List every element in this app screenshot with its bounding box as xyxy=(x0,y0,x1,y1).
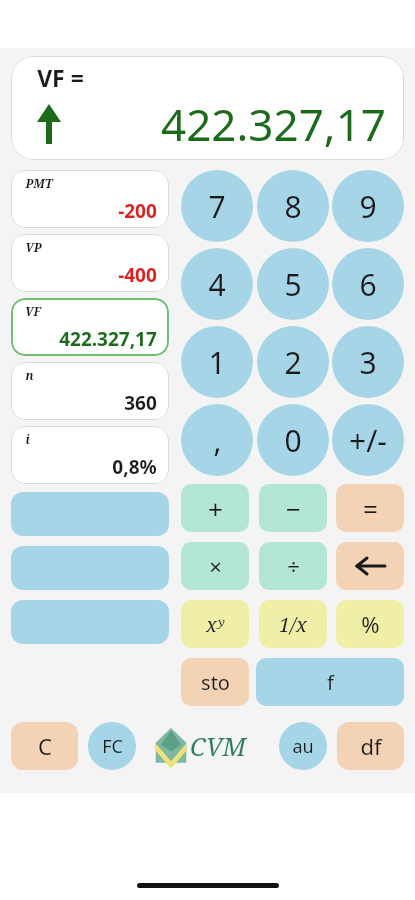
staticText: PMT xyxy=(25,175,53,191)
button[interactable]: +/- xyxy=(332,404,404,476)
button[interactable] xyxy=(11,546,169,590)
button[interactable]: ÷ xyxy=(259,542,327,590)
button[interactable]: , xyxy=(181,404,253,476)
button[interactable] xyxy=(11,492,169,536)
staticText: 6 xyxy=(359,264,377,305)
button[interactable]: au xyxy=(279,722,327,770)
button[interactable]: FC xyxy=(88,722,136,770)
staticText: i xyxy=(25,431,30,447)
staticText: 5 xyxy=(284,264,302,305)
staticText: f xyxy=(327,669,334,696)
staticText: C xyxy=(38,731,52,761)
staticText: CVM xyxy=(190,729,247,763)
button[interactable]: sto xyxy=(181,658,249,706)
button[interactable]: 9 xyxy=(332,170,404,242)
staticText: VF xyxy=(25,303,41,319)
staticText: VF = xyxy=(37,62,84,93)
button[interactable]: f xyxy=(256,658,404,706)
staticText: 2 xyxy=(284,342,302,383)
staticText: 0 xyxy=(284,420,302,461)
staticText: 9 xyxy=(359,186,377,227)
staticText: ÷ xyxy=(287,551,300,581)
staticText: sto xyxy=(201,669,230,696)
button[interactable]: × xyxy=(181,542,249,590)
button[interactable]: − xyxy=(259,484,327,532)
button[interactable]: VP xyxy=(11,234,169,292)
staticText: -200 xyxy=(118,198,157,224)
button[interactable]: Backspace xyxy=(336,542,404,590)
button[interactable]: 2 xyxy=(257,326,329,398)
button[interactable]: 3 xyxy=(332,326,404,398)
staticText: 422.327,17 xyxy=(161,94,386,154)
button[interactable]: VF xyxy=(11,298,169,356)
staticText: 8 xyxy=(284,186,302,227)
button[interactable]: df xyxy=(337,722,404,770)
button[interactable]: % xyxy=(336,600,404,648)
staticText: +/- xyxy=(349,420,387,461)
staticText: % xyxy=(361,609,380,639)
button[interactable]: = xyxy=(336,484,404,532)
staticText: VP xyxy=(25,239,42,255)
button[interactable]: + xyxy=(181,484,249,532)
staticText: , xyxy=(213,420,222,461)
staticText: 1 xyxy=(208,342,226,383)
button[interactable]: 1/x xyxy=(259,600,327,648)
staticText: × xyxy=(209,551,222,581)
staticText: 3 xyxy=(359,342,377,383)
button[interactable]: PMT xyxy=(11,170,169,228)
button[interactable]: C xyxy=(11,722,78,770)
staticText: -400 xyxy=(118,262,157,288)
button[interactable] xyxy=(11,600,169,644)
button[interactable]: 6 xyxy=(332,248,404,320)
staticText: 360 xyxy=(124,390,157,416)
button[interactable]: 8 xyxy=(257,170,329,242)
button[interactable]: 4 xyxy=(181,248,253,320)
staticText: df xyxy=(360,731,382,761)
staticText: FC xyxy=(102,734,123,759)
button[interactable]: 5 xyxy=(257,248,329,320)
button[interactable]: CVM xyxy=(154,726,247,766)
staticText: 4 xyxy=(208,264,226,305)
staticText: = xyxy=(363,491,378,526)
staticText: + xyxy=(208,491,223,526)
staticText: xʸ xyxy=(206,611,224,638)
button[interactable]: n xyxy=(11,362,169,420)
button[interactable]: 7 xyxy=(181,170,253,242)
button[interactable]: xʸ xyxy=(181,600,249,648)
staticText: au xyxy=(292,734,314,759)
staticText: − xyxy=(286,491,301,526)
button[interactable]: VF = xyxy=(11,56,404,160)
staticText: 1/x xyxy=(279,611,307,638)
button[interactable]: i xyxy=(11,426,169,484)
staticText: 0,8% xyxy=(112,454,157,480)
button[interactable]: 1 xyxy=(181,326,253,398)
staticText: 7 xyxy=(208,186,226,227)
button[interactable]: 0 xyxy=(257,404,329,476)
staticText: n xyxy=(25,367,34,383)
staticText: 422.327,17 xyxy=(59,326,157,352)
